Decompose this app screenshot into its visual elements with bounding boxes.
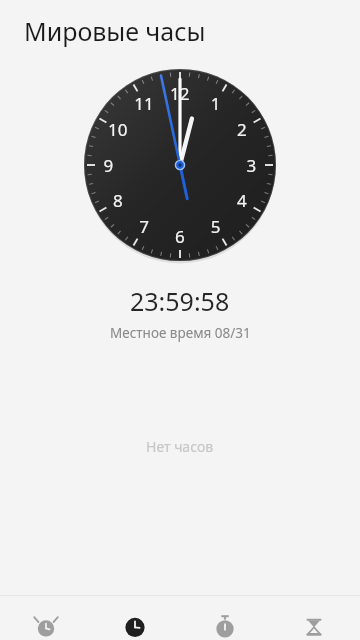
button[interactable]: Stopwatch	[181, 596, 269, 640]
button[interactable]: Alarm	[2, 596, 90, 640]
button[interactable]: Timer	[270, 596, 358, 640]
button[interactable]: World clock	[91, 596, 179, 640]
